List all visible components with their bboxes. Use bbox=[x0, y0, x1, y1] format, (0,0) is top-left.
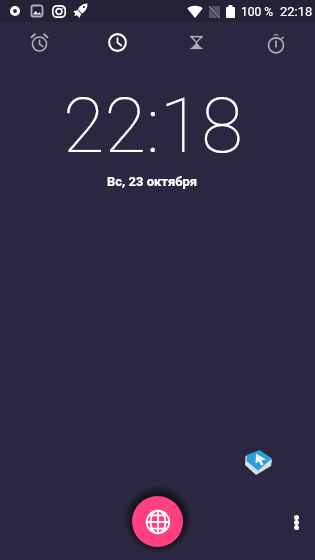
staticText: 22:18 bbox=[280, 4, 313, 19]
staticText: mobile-review.com bbox=[230, 475, 295, 484]
button[interactable]: Clock bbox=[78, 22, 157, 63]
button[interactable]: Alarm bbox=[0, 22, 78, 63]
staticText: 22:18 bbox=[63, 81, 243, 170]
button[interactable]: Timer bbox=[157, 22, 236, 63]
staticText: 100 % bbox=[241, 5, 273, 19]
button[interactable]: Stopwatch bbox=[236, 22, 315, 63]
button[interactable]: More options bbox=[280, 506, 312, 538]
button[interactable]: Add city clock bbox=[132, 496, 183, 547]
staticText: Вс, 23 октября bbox=[107, 174, 198, 189]
